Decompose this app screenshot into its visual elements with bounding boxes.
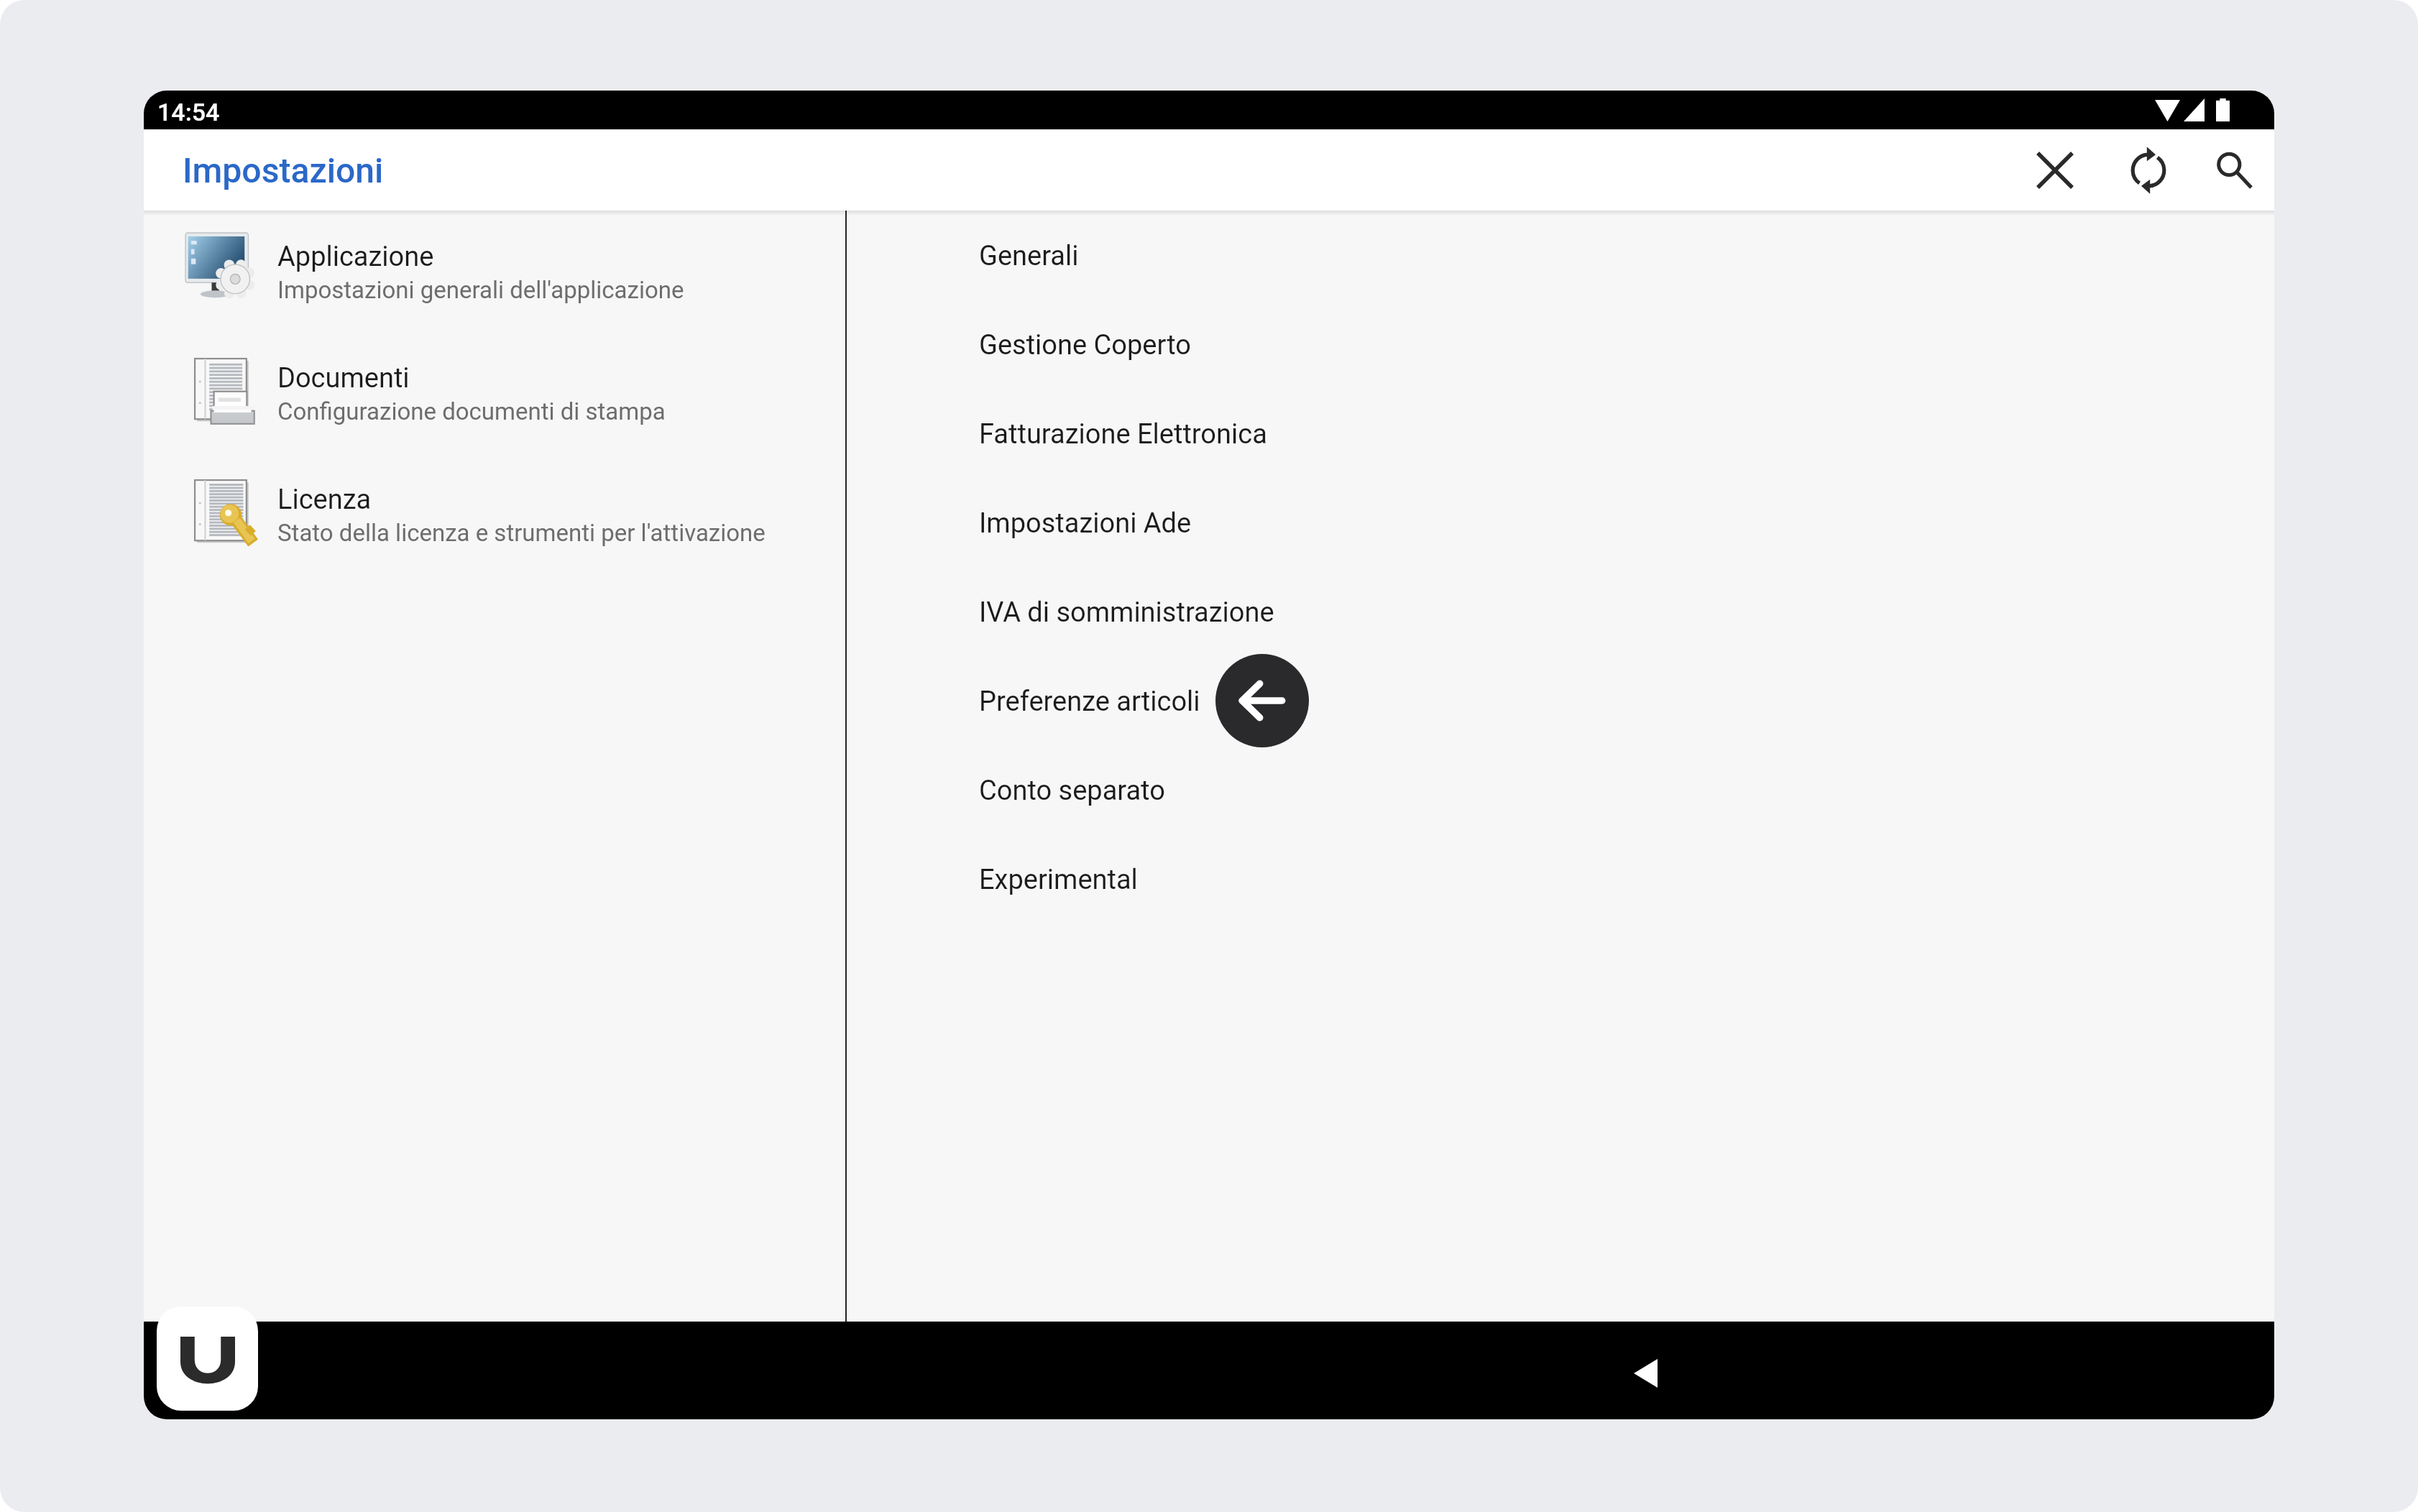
staticText: Licenza (277, 484, 372, 516)
button[interactable]: Licenza (144, 454, 845, 576)
button[interactable]: IVA di somministrazione (847, 568, 2274, 657)
staticText: Generali (979, 240, 1079, 272)
staticText: Conto separato (979, 775, 1165, 807)
button[interactable]: Conto separato (847, 746, 2274, 835)
staticText: Experimental (979, 864, 1138, 896)
button[interactable]: Close (2014, 129, 2095, 211)
staticText: 14:54 (157, 98, 220, 126)
staticText: IVA di somministrazione (979, 596, 1274, 629)
button[interactable]: App logo (157, 1306, 258, 1411)
button[interactable]: Search (2193, 129, 2274, 211)
button[interactable]: Experimental (847, 835, 2274, 924)
staticText: Preferenze articoli (979, 686, 1200, 718)
staticText: Impostazioni (183, 150, 384, 190)
staticText: Gestione Coperto (979, 329, 1191, 361)
staticText: Fatturazione Elettronica (979, 418, 1267, 451)
button[interactable]: Generali (847, 211, 2274, 300)
button[interactable]: Documenti (144, 333, 845, 454)
staticText: Configurazione documenti di stampa (277, 397, 666, 425)
button[interactable]: Impostazioni Ade (847, 479, 2274, 568)
button[interactable]: Applicazione (144, 211, 845, 333)
staticText: Impostazioni Ade (979, 507, 1192, 540)
staticText: Applicazione (277, 241, 434, 273)
staticText: Documenti (277, 362, 410, 395)
staticText: Impostazioni generali dell'applicazione (277, 276, 684, 304)
staticText: Stato della licenza e strumenti per l'at… (277, 519, 766, 547)
button[interactable]: Gestione Coperto (847, 300, 2274, 389)
button[interactable]: Back (1612, 1340, 1678, 1406)
button[interactable]: Fatturazione Elettronica (847, 389, 2274, 479)
button[interactable]: Refresh (2107, 129, 2189, 211)
button[interactable]: Back (1215, 654, 1309, 747)
button[interactable]: Preferenze articoli (847, 657, 2274, 746)
